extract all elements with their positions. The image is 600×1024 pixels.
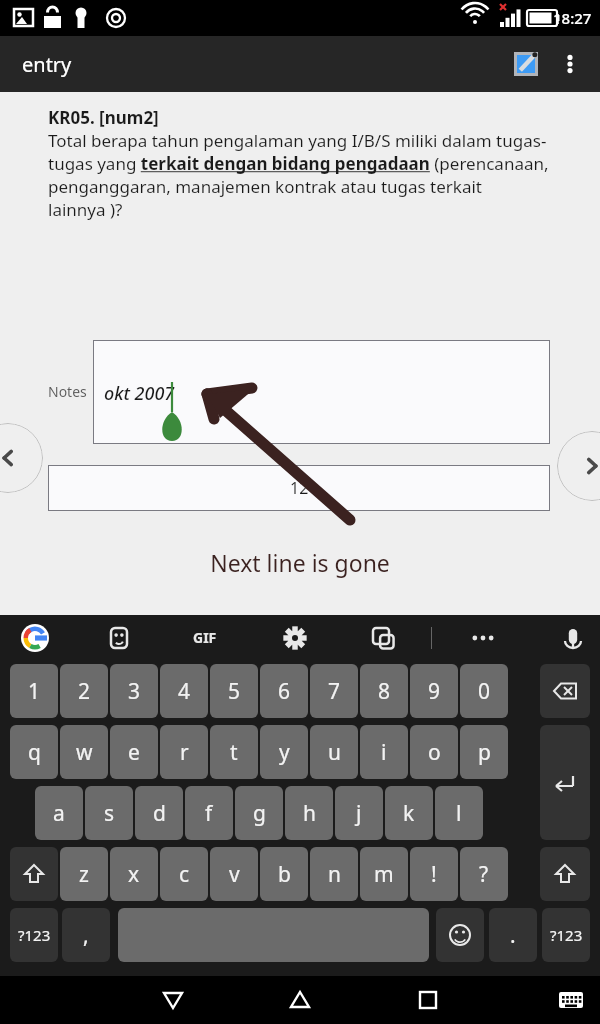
button[interactable]: k: [385, 786, 433, 840]
button[interactable]: s: [85, 786, 133, 840]
button[interactable]: Google: [10, 615, 60, 660]
button[interactable]: t: [210, 725, 258, 779]
button[interactable]: e: [110, 725, 158, 779]
staticText: 12: [290, 477, 309, 499]
button[interactable]: Settings: [270, 615, 320, 660]
button[interactable]: .: [489, 908, 537, 962]
button[interactable]: j: [335, 786, 383, 840]
button[interactable]: Back: [148, 976, 198, 1024]
staticText: x: [128, 860, 140, 889]
button[interactable]: Backspace: [540, 664, 590, 718]
staticText: z: [79, 860, 89, 889]
button[interactable]: Space: [118, 908, 429, 962]
button[interactable]: 7: [310, 664, 358, 718]
staticText: ?123: [18, 925, 51, 945]
button[interactable]: Enter: [540, 725, 590, 840]
button[interactable]: r: [160, 725, 208, 779]
button[interactable]: 5: [210, 664, 258, 718]
staticText: 6: [278, 677, 291, 706]
staticText: 4: [178, 677, 191, 706]
button[interactable]: x: [110, 847, 158, 901]
staticText: 1: [28, 677, 41, 706]
button[interactable]: More: [455, 615, 511, 660]
button[interactable]: ?123: [542, 908, 590, 962]
button[interactable]: u: [310, 725, 358, 779]
staticText: i: [381, 738, 387, 767]
button[interactable]: o: [410, 725, 458, 779]
staticText: u: [328, 738, 341, 767]
button[interactable]: w: [60, 725, 108, 779]
button[interactable]: Next: [557, 431, 600, 501]
button[interactable]: Shift: [10, 847, 58, 901]
button[interactable]: Home: [275, 976, 325, 1024]
button[interactable]: ,: [62, 908, 110, 962]
staticText: w: [76, 738, 93, 767]
button[interactable]: Stickers: [94, 615, 144, 660]
button[interactable]: m: [360, 847, 408, 901]
button[interactable]: d: [135, 786, 183, 840]
staticText: l: [456, 799, 462, 828]
button[interactable]: y: [260, 725, 308, 779]
staticText: g: [253, 799, 266, 828]
button[interactable]: 12: [48, 465, 550, 511]
button[interactable]: GIF: [175, 615, 235, 660]
staticText: o: [428, 738, 441, 767]
button[interactable]: p: [460, 725, 508, 779]
staticText: 9: [428, 677, 441, 706]
button[interactable]: 3: [110, 664, 158, 718]
button[interactable]: a: [35, 786, 83, 840]
button[interactable]: ?: [460, 847, 508, 901]
staticText: q: [28, 738, 41, 767]
staticText: v: [229, 860, 240, 889]
button[interactable]: More options: [548, 42, 592, 86]
button[interactable]: n: [310, 847, 358, 901]
button[interactable]: c: [160, 847, 208, 901]
button[interactable]: Recents: [403, 976, 453, 1024]
staticText: f: [205, 799, 213, 828]
button[interactable]: 4: [160, 664, 208, 718]
staticText: 2: [78, 677, 91, 706]
button[interactable]: 2: [60, 664, 108, 718]
staticText: GIF: [193, 628, 217, 647]
staticText: Total berapa tahun pengalaman yang I/B/S…: [48, 129, 560, 221]
button[interactable]: Keyboard: [548, 976, 594, 1024]
staticText: ,: [83, 921, 89, 950]
staticText: .: [510, 921, 516, 950]
button[interactable]: h: [285, 786, 333, 840]
button[interactable]: Edit: [504, 42, 548, 86]
staticText: n: [328, 860, 341, 889]
button[interactable]: 0: [460, 664, 508, 718]
staticText: 0: [478, 677, 491, 706]
button[interactable]: Emoji: [436, 908, 484, 962]
button[interactable]: okt 2007: [93, 340, 550, 444]
button[interactable]: 6: [260, 664, 308, 718]
button[interactable]: g: [235, 786, 283, 840]
staticText: entry: [22, 51, 72, 78]
button[interactable]: ?123: [10, 908, 58, 962]
button[interactable]: l: [435, 786, 483, 840]
staticText: s: [104, 799, 115, 828]
button[interactable]: Previous: [0, 423, 43, 493]
button[interactable]: 1: [10, 664, 58, 718]
staticText: t: [230, 738, 238, 767]
staticText: 8: [378, 677, 391, 706]
staticText: e: [128, 738, 140, 767]
button[interactable]: i: [360, 725, 408, 779]
staticText: ?123: [550, 925, 583, 945]
staticText: b: [278, 860, 291, 889]
staticText: k: [403, 799, 415, 828]
button[interactable]: b: [260, 847, 308, 901]
button[interactable]: v: [210, 847, 258, 901]
button[interactable]: 9: [410, 664, 458, 718]
button[interactable]: Translate: [358, 615, 408, 660]
button[interactable]: f: [185, 786, 233, 840]
staticText: m: [374, 860, 394, 889]
button[interactable]: 8: [360, 664, 408, 718]
button[interactable]: q: [10, 725, 58, 779]
button[interactable]: Voice input: [548, 615, 598, 660]
staticText: j: [356, 799, 362, 828]
button[interactable]: z: [60, 847, 108, 901]
staticText: c: [179, 860, 190, 889]
button[interactable]: Shift: [540, 847, 590, 901]
button[interactable]: !: [410, 847, 458, 901]
